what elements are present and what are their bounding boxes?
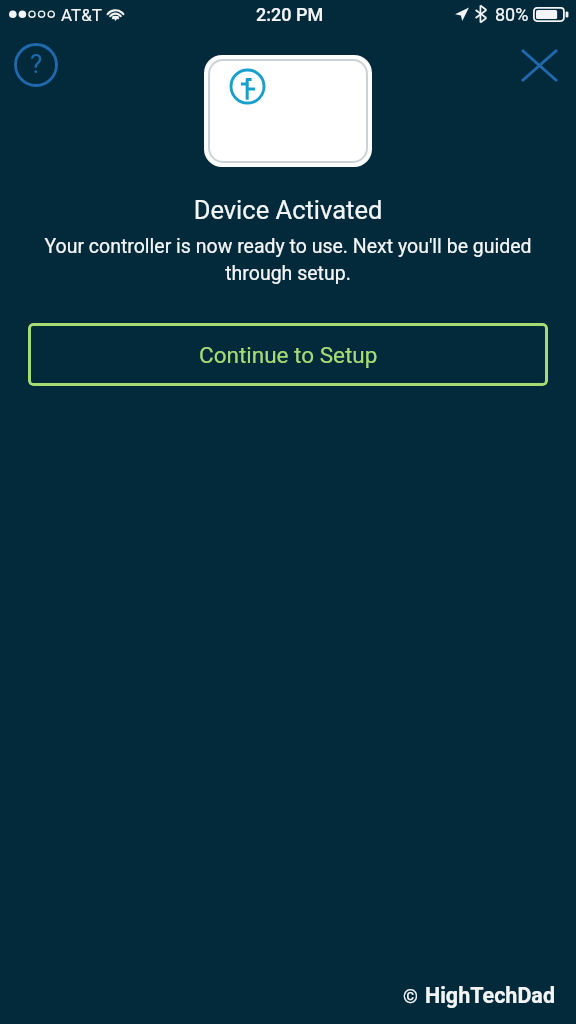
staticText: ? bbox=[30, 49, 43, 79]
staticText: Device Activated bbox=[0, 195, 576, 225]
button[interactable]: Close bbox=[512, 38, 566, 92]
staticText: Your controller is now ready to use. Nex… bbox=[18, 235, 558, 285]
staticText: © bbox=[403, 985, 418, 1007]
staticText: HighTechDad bbox=[425, 983, 555, 1008]
staticText: AT&T bbox=[61, 5, 102, 25]
button[interactable]: Help bbox=[13, 42, 59, 88]
staticText: 2:20 PM bbox=[256, 4, 324, 25]
button[interactable]: Continue to Setup bbox=[28, 323, 548, 386]
staticText: Continue to Setup bbox=[199, 342, 378, 368]
staticText: 80% bbox=[495, 4, 529, 25]
